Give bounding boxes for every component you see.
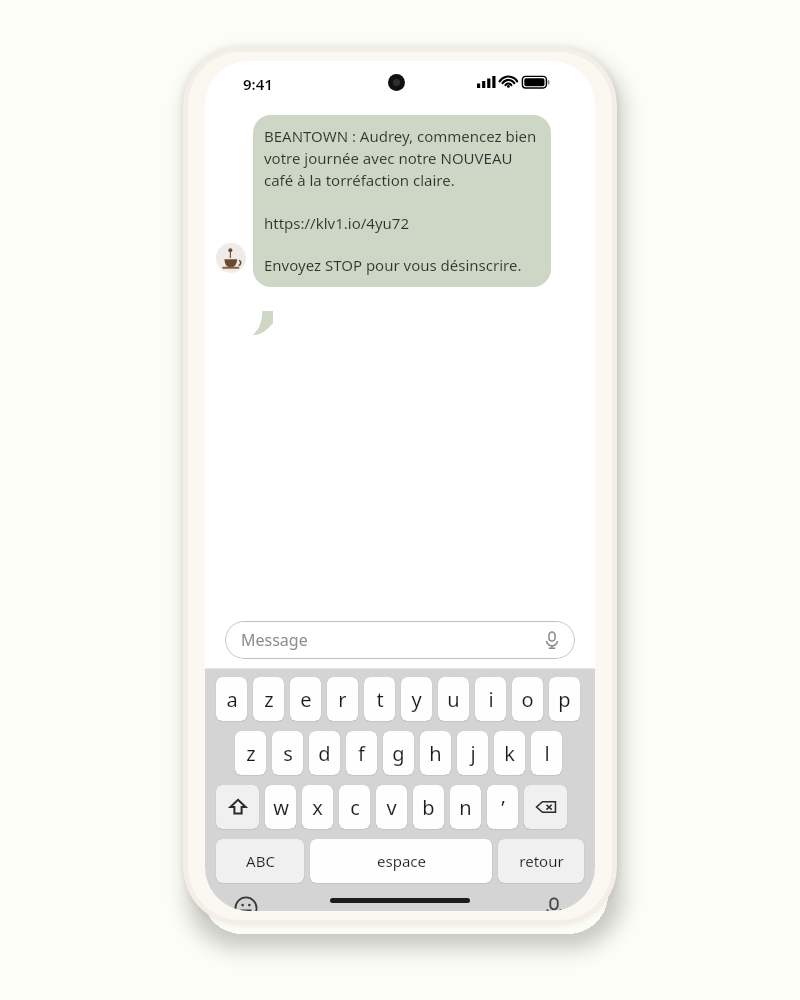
staticText: g — [392, 740, 405, 767]
button[interactable]: y — [401, 677, 432, 721]
staticText: e — [300, 686, 312, 713]
button[interactable]: a — [216, 677, 247, 721]
staticText: t — [376, 686, 384, 713]
button[interactable]: ABC — [216, 839, 304, 883]
button[interactable]: Backspace — [524, 785, 567, 829]
button[interactable]: s — [272, 731, 303, 775]
staticText: z — [246, 740, 256, 767]
staticText: ABC — [246, 851, 275, 871]
staticText: k — [504, 740, 515, 767]
staticText: Message — [241, 629, 308, 651]
staticText: i — [488, 686, 494, 713]
staticText: s — [283, 740, 293, 767]
staticText: b — [422, 794, 435, 821]
button[interactable]: retour — [498, 839, 584, 883]
button[interactable]: e — [290, 677, 321, 721]
button[interactable]: v — [376, 785, 407, 829]
button[interactable]: c — [339, 785, 370, 829]
button[interactable]: f — [346, 731, 377, 775]
button[interactable]: h — [420, 731, 451, 775]
staticText: z — [264, 686, 274, 713]
staticText: j — [470, 740, 476, 767]
staticText: espace — [377, 851, 426, 871]
staticText: u — [447, 686, 460, 713]
button[interactable]: u — [438, 677, 469, 721]
staticText: w — [273, 794, 289, 821]
button[interactable]: l — [531, 731, 562, 775]
button[interactable]: Emoji keyboard — [233, 895, 259, 911]
button[interactable]: Shift — [216, 785, 259, 829]
button[interactable]: w — [265, 785, 296, 829]
button[interactable]: p — [549, 677, 580, 721]
staticText: f — [358, 740, 365, 767]
staticText: v — [386, 794, 397, 821]
staticText: https://klv1.io/4yu72 — [264, 213, 409, 233]
button[interactable]: b — [413, 785, 444, 829]
staticText: Envoyez STOP pour vous désinscrire. — [264, 255, 522, 275]
button[interactable]: espace — [310, 839, 492, 883]
staticText: l — [544, 740, 550, 767]
staticText: h — [429, 740, 442, 767]
button[interactable]: r — [327, 677, 358, 721]
staticText: y — [411, 686, 422, 713]
staticText: x — [312, 794, 323, 821]
staticText: BEANTOWN : Audrey, commencez bien votre … — [264, 126, 540, 191]
staticText: ’ — [501, 794, 505, 821]
button[interactable]: o — [512, 677, 543, 721]
button[interactable]: Dictate message — [541, 629, 563, 651]
button[interactable]: i — [475, 677, 506, 721]
button[interactable]: BEANTOWN : Audrey, commencez bien votre … — [253, 115, 551, 287]
button[interactable]: j — [457, 731, 488, 775]
button[interactable]: ’ — [487, 785, 518, 829]
staticText: r — [338, 686, 347, 713]
staticText: n — [459, 794, 472, 821]
button[interactable]: z — [253, 677, 284, 721]
button[interactable]: x — [302, 785, 333, 829]
button[interactable]: t — [364, 677, 395, 721]
staticText: d — [318, 740, 331, 767]
button[interactable]: z — [235, 731, 266, 775]
button[interactable]: n — [450, 785, 481, 829]
button[interactable]: Message — [225, 621, 575, 659]
button[interactable]: Contact avatar — [216, 243, 246, 273]
staticText: a — [226, 686, 238, 713]
button[interactable]: k — [494, 731, 525, 775]
staticText: 9:41 — [243, 74, 273, 94]
button[interactable]: g — [383, 731, 414, 775]
staticText: o — [521, 686, 534, 713]
staticText: retour — [519, 851, 564, 871]
button[interactable]: Voice input — [541, 895, 567, 911]
button[interactable]: d — [309, 731, 340, 775]
staticText: p — [558, 686, 571, 713]
staticText: c — [350, 794, 360, 821]
